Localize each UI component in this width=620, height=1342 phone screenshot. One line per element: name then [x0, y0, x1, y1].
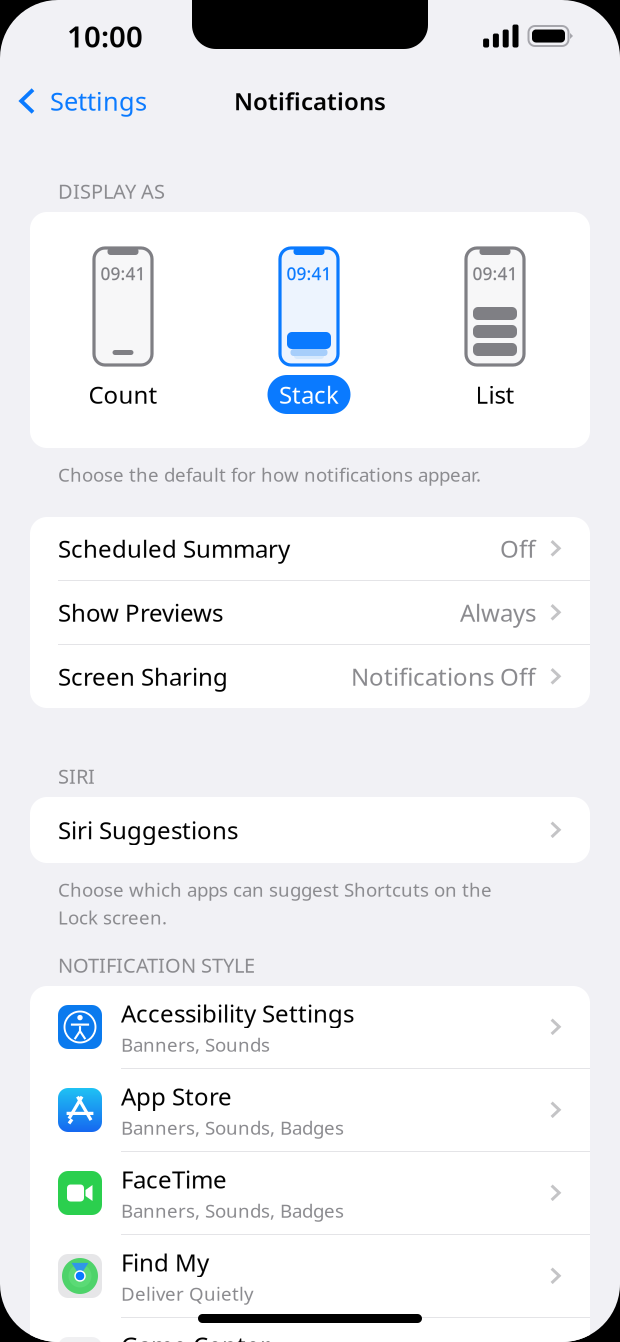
- staticText: SIRI: [58, 763, 95, 789]
- staticText: Game Center: [121, 1329, 270, 1342]
- staticText: Siri Suggestions: [58, 814, 238, 846]
- staticText: Banners, Sounds: [121, 1032, 270, 1057]
- staticText: Scheduled Summary: [58, 533, 290, 564]
- staticText: Find My: [121, 1246, 209, 1278]
- button[interactable]: 09:41: [30, 212, 216, 448]
- staticText: Choose which apps can suggest Shortcuts …: [58, 877, 492, 930]
- staticText: Count: [88, 379, 157, 410]
- staticText: List: [475, 379, 514, 410]
- staticText: Banners, Sounds, Badges: [121, 1198, 344, 1223]
- staticText: 09:41: [100, 262, 145, 285]
- button[interactable]: Find My: [30, 1235, 590, 1317]
- button[interactable]: 09:41: [402, 212, 588, 448]
- button[interactable]: FaceTime: [30, 1152, 590, 1234]
- staticText: 09:41: [472, 262, 517, 285]
- staticText: Screen Sharing: [58, 661, 228, 692]
- staticText: Off: [500, 533, 536, 564]
- staticText: FaceTime: [121, 1163, 227, 1195]
- staticText: Show Previews: [58, 597, 223, 628]
- staticText: Notifications: [234, 85, 386, 117]
- staticText: Always: [460, 597, 536, 628]
- staticText: App Store: [121, 1080, 232, 1112]
- staticText: Deliver Quietly: [121, 1281, 254, 1306]
- button[interactable]: Settings: [0, 76, 147, 126]
- button[interactable]: Siri Suggestions: [30, 797, 590, 863]
- button[interactable]: Scheduled Summary: [30, 517, 590, 580]
- staticText: 09:41: [286, 262, 331, 285]
- button[interactable]: Screen Sharing: [30, 645, 590, 708]
- button[interactable]: Show Previews: [30, 581, 590, 644]
- staticText: NOTIFICATION STYLE: [58, 952, 255, 978]
- staticText: DISPLAY AS: [58, 178, 165, 204]
- button[interactable]: 09:41: [216, 212, 402, 448]
- button[interactable]: Accessibility Settings: [30, 986, 590, 1068]
- button[interactable]: App Store: [30, 1069, 590, 1151]
- button[interactable]: Game Center: [30, 1318, 590, 1342]
- staticText: Accessibility Settings: [121, 997, 354, 1029]
- staticText: 10:00: [67, 16, 143, 55]
- staticText: Stack: [279, 379, 339, 410]
- staticText: Choose the default for how notifications…: [58, 462, 481, 487]
- staticText: Banners, Sounds, Badges: [121, 1115, 344, 1140]
- staticText: Settings: [50, 84, 147, 118]
- staticText: Notifications Off: [351, 661, 536, 692]
